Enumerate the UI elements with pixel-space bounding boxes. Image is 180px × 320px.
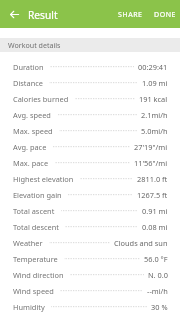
- staticText: Weather: [13, 238, 43, 248]
- button[interactable]: Humidity: [0, 299, 180, 315]
- staticText: Temperature: [13, 254, 58, 264]
- button[interactable]: Calories burned: [0, 91, 180, 107]
- staticText: Max. pace: [13, 158, 49, 168]
- staticText: 0.08 mi: [142, 222, 168, 232]
- button[interactable]: Elevation gain: [0, 187, 180, 203]
- button[interactable]: Temperature: [0, 251, 180, 267]
- staticText: Duration: [13, 62, 44, 72]
- staticText: Workout details: [8, 40, 61, 50]
- staticText: Total descent: [13, 222, 59, 232]
- button[interactable]: Total ascent: [0, 203, 180, 219]
- button[interactable]: Wind speed: [0, 283, 180, 299]
- staticText: 11'56"/mi: [134, 158, 168, 168]
- staticText: 1.09 mi: [142, 78, 168, 88]
- staticText: 30 %: [151, 302, 168, 312]
- staticText: 00:29:41: [138, 62, 168, 72]
- staticText: 0.91 mi: [142, 206, 168, 216]
- staticText: 56.0 °F: [144, 254, 168, 264]
- staticText: Max. speed: [13, 126, 53, 136]
- staticText: DONE: [154, 10, 176, 20]
- staticText: --mi/h: [147, 286, 168, 296]
- staticText: 1267.5 ft: [137, 190, 168, 200]
- staticText: Avg. pace: [13, 142, 47, 152]
- button[interactable]: Distance: [0, 75, 180, 91]
- button[interactable]: Weather: [0, 235, 180, 251]
- staticText: Result: [28, 8, 58, 22]
- button[interactable]: SHARE: [113, 5, 148, 24]
- staticText: Elevation gain: [13, 190, 62, 200]
- staticText: 2811.0 ft: [137, 174, 168, 184]
- staticText: 5.0mi/h: [141, 126, 168, 136]
- staticText: Humidity: [13, 302, 45, 312]
- staticText: 2.1mi/h: [141, 110, 168, 120]
- button[interactable]: Avg. speed: [0, 107, 180, 123]
- staticText: Total ascent: [13, 206, 55, 216]
- button[interactable]: Max. pace: [0, 155, 180, 171]
- button[interactable]: Highest elevation: [0, 171, 180, 187]
- staticText: N. 0.0: [148, 270, 168, 280]
- staticText: Wind direction: [13, 270, 64, 280]
- staticText: Calories burned: [13, 94, 69, 104]
- button[interactable]: Avg. pace: [0, 139, 180, 155]
- button[interactable]: DONE: [148, 5, 180, 24]
- staticText: Clouds and sun: [114, 238, 168, 248]
- button[interactable]: Total descent: [0, 219, 180, 235]
- staticText: 191 kcal: [139, 94, 168, 104]
- staticText: SHARE: [118, 10, 143, 20]
- button[interactable]: Max. speed: [0, 123, 180, 139]
- staticText: Highest elevation: [13, 174, 74, 184]
- staticText: Distance: [13, 78, 43, 88]
- staticText: 27'19"/mi: [134, 142, 168, 152]
- staticText: Avg. speed: [13, 110, 51, 120]
- button[interactable]: Duration: [0, 59, 180, 75]
- staticText: Wind speed: [13, 286, 54, 296]
- button[interactable]: Wind direction: [0, 267, 180, 283]
- button[interactable]: Back: [0, 0, 28, 28]
